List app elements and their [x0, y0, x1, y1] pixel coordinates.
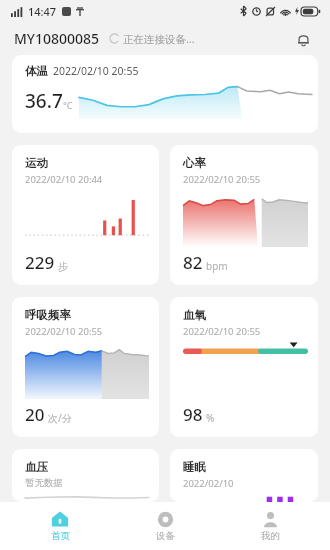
staticText: 血压	[25, 460, 48, 474]
button[interactable]: 我的	[225, 502, 315, 550]
staticText: 首页	[51, 530, 70, 542]
staticText: 2022/02/10	[183, 477, 234, 490]
staticText: 次/分	[48, 411, 72, 425]
staticText: 设备	[156, 530, 175, 542]
staticText: 血氧	[183, 308, 206, 322]
staticText: 20	[25, 403, 45, 426]
staticText: 36.7	[25, 88, 63, 114]
staticText: 2022/02/10 20:55	[53, 64, 139, 78]
staticText: 98	[183, 403, 203, 426]
button[interactable]: 呼吸频率	[12, 297, 159, 437]
staticText: 2022/02/10 20:44	[25, 173, 103, 186]
staticText: 体温	[25, 64, 48, 78]
staticText: 14:47	[28, 4, 57, 19]
button[interactable]: Notifications	[290, 26, 316, 52]
button[interactable]: 体温	[12, 55, 318, 133]
staticText: 暂无数据	[25, 477, 63, 489]
button[interactable]: 血氧	[170, 297, 318, 437]
button[interactable]: 首页	[15, 502, 105, 550]
staticText: 229	[25, 251, 55, 274]
staticText: °C	[63, 99, 73, 111]
staticText: 睡眠	[183, 460, 206, 474]
staticText: 运动	[25, 156, 48, 170]
staticText: 2022/02/10 20:55	[183, 325, 261, 338]
staticText: 呼吸频率	[25, 308, 71, 322]
staticText: bpm	[206, 259, 228, 273]
button[interactable]: 血压	[12, 449, 159, 502]
staticText: 正在连接设备...	[123, 32, 195, 46]
staticText: %	[206, 411, 215, 425]
staticText: 步	[58, 260, 68, 273]
staticText: 2022/02/10 20:55	[25, 325, 103, 338]
staticText: 82	[183, 251, 203, 274]
staticText: MY10800085	[14, 29, 100, 48]
button[interactable]: 设备	[120, 502, 210, 550]
staticText: 2022/02/10 20:55	[183, 173, 261, 186]
staticText: 心率	[183, 156, 206, 170]
button[interactable]: 睡眠	[170, 449, 318, 502]
button[interactable]: 运动	[12, 145, 159, 285]
staticText: 我的	[261, 530, 280, 542]
button[interactable]: 心率	[170, 145, 318, 285]
